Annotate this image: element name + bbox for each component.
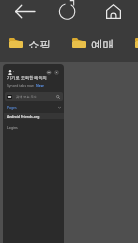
staticText: Logins [7, 125, 18, 130]
button[interactable]: Pages [3, 104, 64, 110]
button[interactable]: 검색 또는 주소 [5, 92, 63, 101]
staticText: Synced tabs now [7, 83, 34, 88]
button[interactable]: Reload [50, 0, 86, 21]
button[interactable]: Close [53, 68, 60, 76]
button[interactable]: Logins [3, 124, 64, 130]
button[interactable]: Android Friends.org [3, 113, 64, 119]
button[interactable]: 뉴스 [135, 38, 138, 48]
staticText: Android Friends.org [7, 114, 40, 119]
staticText: Pages [7, 105, 17, 110]
staticText: New [36, 83, 44, 88]
button[interactable]: Account [6, 68, 14, 76]
button[interactable]: 쇼핑 [9, 38, 51, 48]
staticText: 검색 또는 주소 [16, 95, 37, 99]
staticText: 기기로 조회한 페이지 [7, 75, 47, 81]
staticText: 쇼핑 [28, 38, 51, 48]
button[interactable]: 예매 [72, 38, 114, 48]
button[interactable]: Tabs [45, 68, 52, 76]
button[interactable]: Back [8, 0, 42, 23]
button[interactable]: Home [96, 0, 130, 23]
staticText: 예매 [91, 38, 114, 48]
